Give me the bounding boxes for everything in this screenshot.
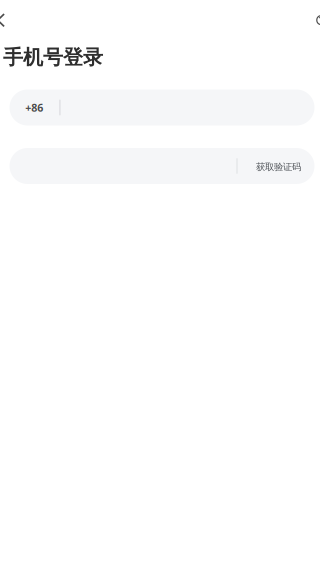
button[interactable]: 获取验证码 bbox=[237, 148, 314, 184]
staticText: +86 bbox=[25, 100, 43, 115]
button[interactable]: Verification code bbox=[9, 148, 314, 184]
button[interactable]: Help bbox=[317, 7, 320, 33]
button[interactable]: Back bbox=[0, 7, 4, 33]
staticText: 手机号登录 bbox=[3, 45, 103, 70]
button[interactable]: Phone number, country code +86 bbox=[9, 89, 314, 125]
staticText: 获取验证码 bbox=[256, 161, 301, 173]
